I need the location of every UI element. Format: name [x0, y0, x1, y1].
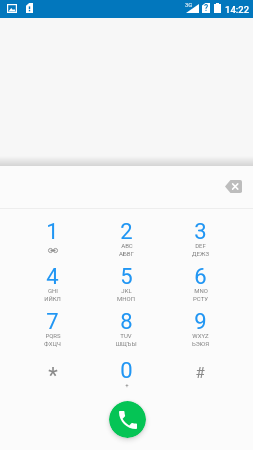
button[interactable]: * — [16, 358, 89, 402]
staticText: * — [48, 363, 58, 389]
button[interactable]: 5 — [89, 264, 163, 308]
staticText: 9 — [194, 309, 207, 335]
button[interactable]: 6 — [163, 264, 237, 308]
button[interactable]: 9 — [163, 309, 237, 353]
button[interactable]: 1 — [16, 219, 89, 263]
staticText: ABC — [121, 242, 133, 249]
button[interactable]: Call — [109, 401, 146, 438]
staticText: + — [125, 381, 129, 388]
staticText: ИЙКЛ — [44, 295, 61, 302]
staticText: 0 — [120, 358, 133, 384]
staticText: # — [195, 364, 205, 382]
staticText: WXYZ — [192, 332, 209, 339]
staticText: 3 — [194, 219, 207, 245]
staticText: JKL — [121, 287, 132, 294]
button[interactable]: 0 — [89, 358, 163, 402]
staticText: 1 — [46, 219, 59, 245]
staticText: ЬЭЮЯ — [192, 340, 209, 347]
staticText: GHI — [48, 287, 58, 294]
staticText: ШЩЪЫ — [115, 340, 137, 347]
button[interactable]: 4 — [16, 264, 89, 308]
staticText: 6 — [194, 264, 207, 290]
button[interactable]: 3 — [163, 219, 237, 263]
button[interactable]: 8 — [89, 309, 163, 353]
staticText: 2 — [120, 219, 133, 245]
staticText: 4 — [46, 264, 59, 290]
staticText: TUV — [120, 332, 132, 339]
staticText: 7 — [46, 309, 59, 335]
button[interactable]: # — [163, 358, 237, 402]
staticText: 14:22 — [225, 4, 250, 15]
staticText: ? — [204, 3, 209, 13]
staticText: ДЕЖЗ — [192, 250, 209, 257]
button[interactable]: 7 — [16, 309, 89, 353]
staticText: 5 — [120, 264, 133, 290]
staticText: АБВГ — [119, 250, 134, 257]
staticText: РСТУ — [193, 295, 208, 302]
staticText: MNO — [194, 287, 208, 294]
button[interactable]: 2 — [89, 219, 163, 263]
staticText: PQRS — [45, 332, 61, 339]
staticText: 3G — [185, 1, 193, 8]
button[interactable]: Backspace — [225, 180, 242, 193]
staticText: МНОП — [117, 295, 135, 302]
staticText: ФХЦЧ — [44, 340, 61, 347]
staticText: 8 — [120, 309, 133, 335]
staticText: DEF — [195, 242, 206, 249]
